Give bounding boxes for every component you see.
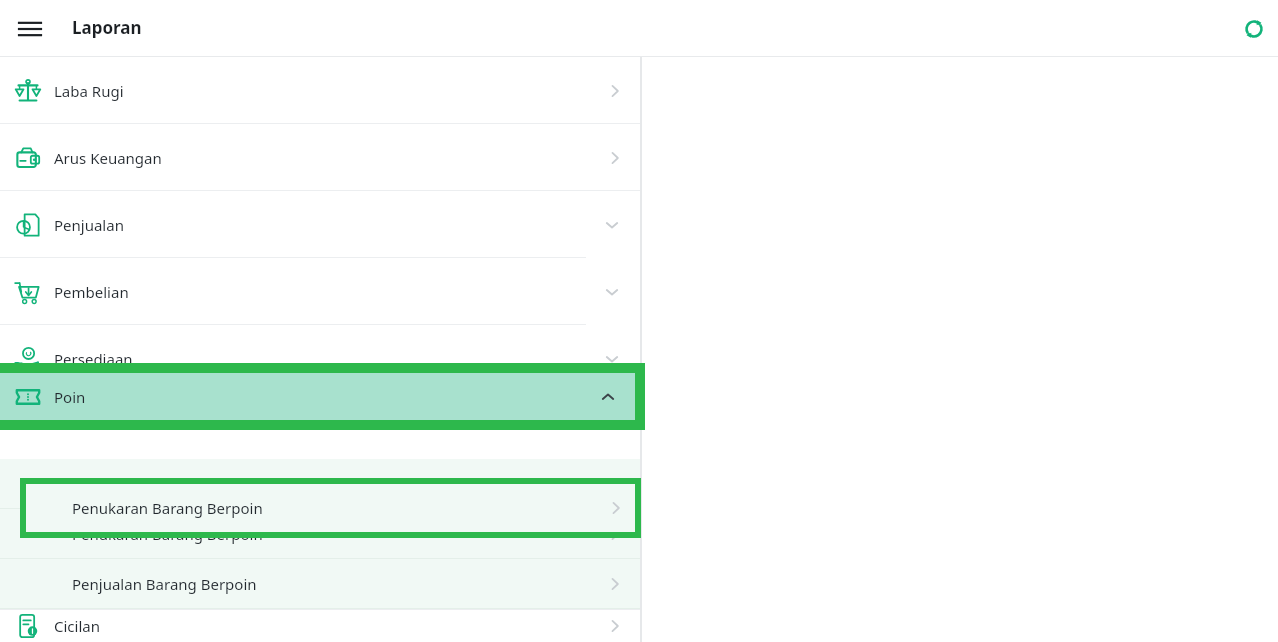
- staticText: Penjualan Barang Berpoin: [72, 574, 257, 594]
- staticText: Cicilan: [54, 616, 100, 636]
- staticText: Berdasarkan Pelanggan: [72, 474, 241, 494]
- staticText: Pembelian: [54, 282, 129, 302]
- button[interactable]: Arus Keuangan: [0, 124, 640, 191]
- button[interactable]: Penjualan: [0, 191, 640, 258]
- button[interactable]: Penukaran Barang Berpoin: [26, 484, 635, 532]
- staticText: Arus Keuangan: [54, 148, 162, 168]
- button[interactable]: Refresh: [1234, 9, 1274, 49]
- button[interactable]: Penjualan Barang Berpoin: [0, 559, 640, 609]
- button[interactable]: Menu: [12, 11, 48, 47]
- button[interactable]: Poin: [0, 363, 645, 430]
- staticText: Penukaran Barang Berpoin: [72, 498, 263, 518]
- button[interactable]: Pembelian: [0, 258, 640, 325]
- staticText: Laba Rugi: [54, 81, 124, 101]
- staticText: Penukaran Barang Berpoin: [72, 524, 263, 544]
- staticText: Persediaan: [54, 349, 133, 369]
- button[interactable]: Berdasarkan Pelanggan: [0, 459, 640, 509]
- button[interactable]: Penukaran Barang Berpoin: [0, 509, 640, 559]
- staticText: Poin: [54, 387, 86, 407]
- button[interactable]: Laba Rugi: [0, 57, 640, 124]
- button[interactable]: Persediaan: [0, 325, 640, 392]
- staticText: Penjualan: [54, 215, 124, 235]
- button[interactable]: Cicilan: [0, 610, 640, 642]
- staticText: Laporan: [72, 16, 142, 39]
